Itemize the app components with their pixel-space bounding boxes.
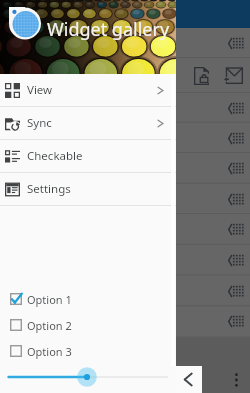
other: Reorder (228, 285, 243, 298)
other: Reorder (228, 37, 243, 50)
button[interactable]: Reorder (0, 184, 250, 214)
button[interactable]: View (0, 74, 176, 106)
staticText: Option 2 (27, 318, 72, 333)
other: Reorder (228, 193, 243, 206)
button[interactable]: Checkable (0, 140, 176, 172)
other: Reorder (228, 315, 243, 328)
staticText: View (27, 82, 53, 98)
button[interactable]: Secure document (0, 58, 250, 93)
button[interactable]: Option 1 (0, 286, 176, 312)
staticText: Checkable (27, 148, 83, 164)
staticText: Option 1 (27, 292, 72, 307)
button[interactable]: Option 3 (0, 338, 176, 364)
button[interactable]: Reorder (0, 123, 250, 153)
button[interactable]: Reorder (0, 93, 250, 123)
other: Reorder (228, 162, 243, 175)
button[interactable]: Reorder (0, 153, 250, 184)
button[interactable]: Secure document (194, 67, 209, 85)
other: Reorder (228, 132, 243, 145)
button[interactable]: Back (175, 366, 202, 393)
other: Reorder (228, 223, 243, 236)
button[interactable]: Option 2 (0, 312, 176, 338)
button[interactable]: Reorder (0, 28, 250, 58)
button[interactable]: Reorder (0, 306, 250, 337)
button[interactable]: Reorder (0, 214, 250, 245)
button[interactable]: Sync (0, 107, 176, 139)
staticText: Sync (27, 115, 52, 131)
other: Reorder (228, 254, 243, 267)
staticText: Settings (27, 181, 71, 197)
button[interactable]: Reorder (0, 276, 250, 307)
other: Reorder (228, 102, 243, 115)
staticText: Option 3 (27, 344, 72, 359)
button[interactable]: Value slider (0, 364, 176, 390)
button[interactable]: Reply to mail (224, 67, 243, 84)
button[interactable]: More options (230, 372, 244, 388)
button[interactable]: Settings (0, 173, 176, 205)
staticText: Widget gallery (47, 17, 170, 42)
button[interactable]: Reorder (0, 245, 250, 276)
